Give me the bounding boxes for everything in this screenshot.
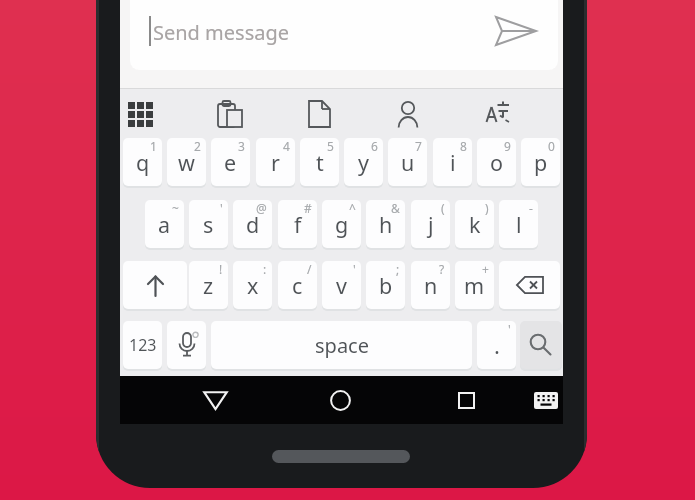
- button[interactable]: [201, 386, 229, 414]
- staticText: e: [224, 148, 237, 177]
- staticText: ': [220, 200, 223, 216]
- button[interactable]: [302, 97, 336, 131]
- staticText: 1: [150, 138, 157, 154]
- staticText: m: [464, 271, 485, 300]
- staticText: 2: [194, 138, 201, 154]
- staticText: n: [424, 271, 438, 300]
- button[interactable]: [167, 321, 206, 369]
- button[interactable]: e: [211, 138, 250, 186]
- staticText: w: [178, 148, 195, 177]
- button[interactable]: k: [455, 200, 494, 248]
- button[interactable]: w: [167, 138, 206, 186]
- staticText: 3: [238, 138, 245, 154]
- button[interactable]: [496, 17, 536, 45]
- staticText: :: [263, 261, 267, 277]
- staticText: 7: [415, 138, 422, 154]
- button[interactable]: x: [233, 261, 272, 309]
- staticText: +: [482, 261, 489, 277]
- button[interactable]: n: [411, 261, 450, 309]
- button[interactable]: h: [366, 200, 405, 248]
- staticText: a: [158, 210, 171, 239]
- staticText: h: [379, 210, 393, 239]
- staticText: y: [358, 148, 369, 177]
- staticText: g: [335, 210, 349, 239]
- staticText: -: [529, 200, 533, 216]
- button[interactable]: space: [211, 321, 472, 369]
- staticText: u: [401, 148, 415, 177]
- button[interactable]: [520, 321, 562, 369]
- button[interactable]: [326, 386, 355, 414]
- button[interactable]: [130, 0, 558, 70]
- button[interactable]: p: [521, 138, 560, 186]
- staticText: k: [469, 210, 481, 239]
- staticText: q: [136, 148, 150, 177]
- staticText: ': [353, 261, 356, 277]
- button[interactable]: z: [189, 261, 228, 309]
- staticText: f: [294, 210, 302, 239]
- button[interactable]: .: [477, 321, 516, 369]
- button[interactable]: [391, 97, 425, 131]
- staticText: o: [490, 148, 504, 177]
- button[interactable]: v: [322, 261, 361, 309]
- button[interactable]: [452, 386, 480, 414]
- button[interactable]: d: [233, 200, 272, 248]
- staticText: 9: [504, 138, 511, 154]
- button[interactable]: [123, 97, 157, 131]
- button[interactable]: o: [477, 138, 516, 186]
- staticText: space: [315, 332, 369, 359]
- staticText: 4: [283, 138, 290, 154]
- staticText: v: [336, 271, 347, 300]
- staticText: c: [292, 271, 303, 300]
- button[interactable]: q: [123, 138, 162, 186]
- button[interactable]: l: [499, 200, 538, 248]
- staticText: ;: [396, 261, 400, 277]
- staticText: r: [271, 148, 280, 177]
- staticText: ~: [172, 200, 179, 216]
- button[interactable]: s: [189, 200, 228, 248]
- staticText: j: [428, 210, 434, 239]
- staticText: ^: [349, 200, 356, 216]
- staticText: 0: [548, 138, 555, 154]
- button[interactable]: y: [344, 138, 383, 186]
- staticText: @: [256, 200, 267, 216]
- staticText: d: [246, 210, 260, 239]
- staticText: ': [508, 321, 511, 337]
- staticText: Send message: [153, 19, 290, 46]
- staticText: 5: [327, 138, 334, 154]
- staticText: 6: [371, 138, 378, 154]
- button[interactable]: u: [388, 138, 427, 186]
- staticText: b: [379, 271, 393, 300]
- staticText: i: [450, 148, 456, 177]
- staticText: ): [485, 200, 489, 216]
- button[interactable]: [213, 97, 247, 131]
- staticText: x: [247, 271, 259, 300]
- staticText: p: [534, 148, 548, 177]
- button[interactable]: [499, 261, 560, 309]
- staticText: l: [516, 210, 522, 239]
- button[interactable]: [481, 97, 515, 131]
- staticText: 8: [460, 138, 467, 154]
- button[interactable]: m: [455, 261, 494, 309]
- button[interactable]: i: [433, 138, 472, 186]
- button[interactable]: t: [300, 138, 339, 186]
- button[interactable]: r: [256, 138, 295, 186]
- button[interactable]: b: [366, 261, 405, 309]
- staticText: z: [203, 271, 214, 300]
- staticText: s: [203, 210, 214, 239]
- button[interactable]: c: [278, 261, 317, 309]
- button[interactable]: g: [322, 200, 361, 248]
- button[interactable]: 123: [123, 321, 162, 369]
- button[interactable]: f: [278, 200, 317, 248]
- button[interactable]: [533, 389, 559, 411]
- staticText: !: [219, 261, 223, 277]
- staticText: .: [494, 330, 500, 360]
- staticText: ?: [439, 261, 445, 277]
- button[interactable]: j: [411, 200, 450, 248]
- staticText: t: [316, 148, 324, 177]
- staticText: /: [307, 261, 312, 277]
- staticText: &: [391, 200, 400, 216]
- staticText: 123: [129, 334, 157, 356]
- button[interactable]: [123, 261, 187, 309]
- button[interactable]: a: [145, 200, 184, 248]
- staticText: #: [304, 200, 312, 216]
